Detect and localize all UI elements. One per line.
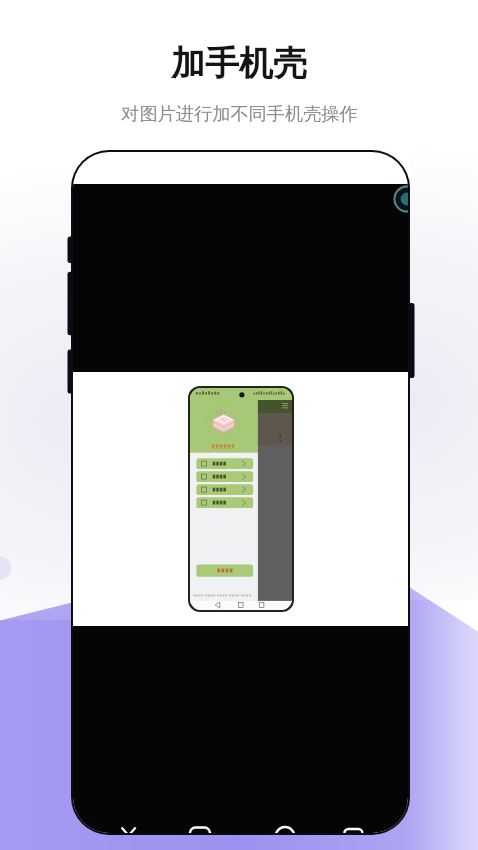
staticText: 加手机壳 bbox=[171, 42, 307, 85]
button[interactable]: 相机 bbox=[263, 821, 307, 833]
staticText: 对图片进行加不同手机壳操作 bbox=[121, 102, 358, 125]
button[interactable]: 我的 bbox=[331, 821, 375, 833]
button[interactable]: 服务协议 bbox=[196, 497, 253, 508]
button[interactable]: 首页 bbox=[107, 821, 151, 833]
button[interactable]: 模板 bbox=[178, 821, 222, 833]
button[interactable]: Menu bbox=[285, 402, 292, 409]
button[interactable]: 问题反馈 bbox=[196, 458, 253, 469]
button[interactable]: 提交系统 bbox=[196, 564, 253, 576]
button[interactable]: 注销账号 bbox=[196, 484, 253, 495]
button[interactable]: 权限查看 bbox=[196, 471, 253, 482]
